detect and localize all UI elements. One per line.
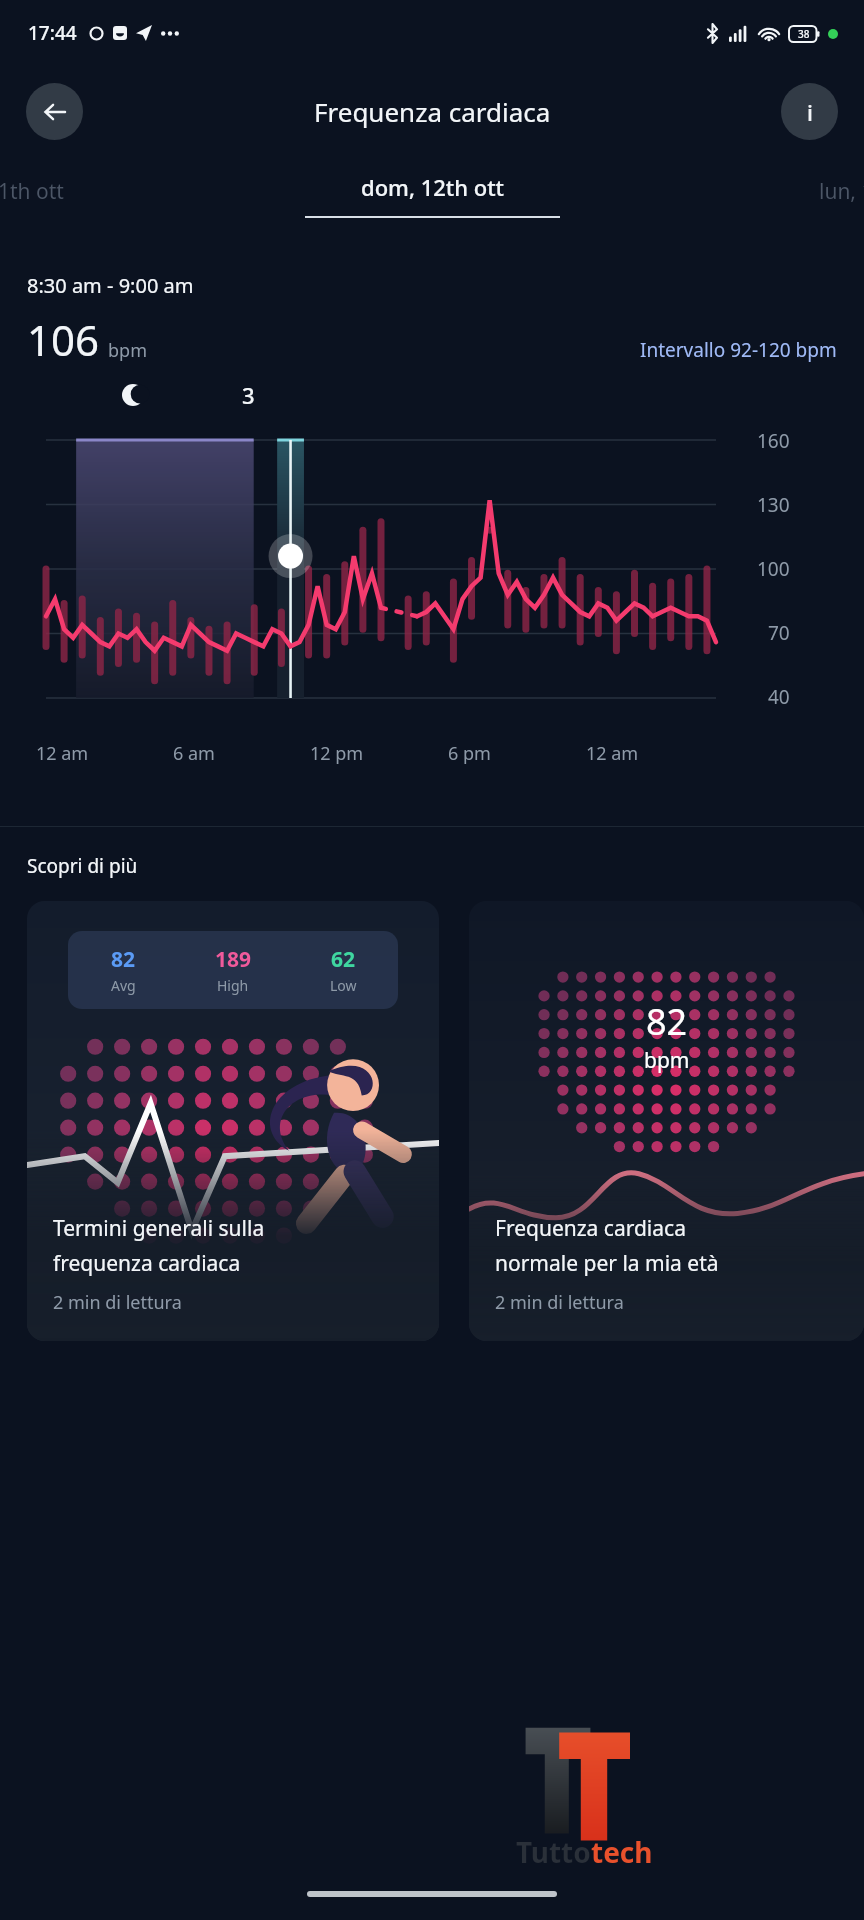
staticText: 40 xyxy=(768,684,790,710)
button[interactable]: lun, 13 xyxy=(819,177,864,206)
staticText: 2 min di lettura xyxy=(53,1290,182,1315)
staticText: High xyxy=(217,976,249,995)
staticText: bpm xyxy=(108,338,147,363)
staticText: 2 min di lettura xyxy=(495,1290,624,1315)
button[interactable]: Information xyxy=(781,83,838,140)
staticText: 82 xyxy=(111,945,136,974)
staticText: 6 am xyxy=(173,741,310,766)
staticText: Intervallo 92-120 bpm xyxy=(640,337,837,363)
staticText: Frequenza cardiaca xyxy=(314,94,551,129)
staticText: Scopri di più xyxy=(27,853,138,879)
button[interactable]: 82 xyxy=(27,901,439,1341)
staticText: 100 xyxy=(757,556,790,582)
staticText: Termini generali sulla xyxy=(53,1214,265,1243)
staticText: 189 xyxy=(215,945,252,974)
staticText: bpm xyxy=(644,1046,690,1075)
staticText: Avg xyxy=(111,976,136,995)
staticText: 3 xyxy=(242,380,255,410)
button[interactable]: 82 xyxy=(469,901,864,1341)
staticText: 62 xyxy=(331,945,356,974)
staticText: 106 xyxy=(27,311,100,368)
staticText: normale per la mia età xyxy=(495,1249,719,1278)
staticText: 70 xyxy=(768,620,790,646)
staticText: 17:44 xyxy=(28,20,77,46)
staticText: 38 xyxy=(798,27,810,41)
staticText: 82 xyxy=(646,997,688,1046)
button[interactable]: 11th ott xyxy=(0,177,64,206)
staticText: dom, 12th ott xyxy=(361,172,505,202)
staticText: Low xyxy=(330,976,357,995)
staticText: 12 am xyxy=(36,741,173,766)
staticText: 6 pm xyxy=(448,741,586,766)
staticText: Tutto xyxy=(516,1833,591,1871)
staticText: Frequenza cardiaca xyxy=(495,1214,686,1243)
staticText: 160 xyxy=(757,428,790,454)
button[interactable]: Back xyxy=(26,83,83,140)
staticText: 12 pm xyxy=(310,741,448,766)
staticText: i xyxy=(807,97,813,127)
staticText: 8:30 am - 9:00 am xyxy=(27,272,194,299)
staticText: 12 am xyxy=(586,741,724,766)
button[interactable]: dom, 12th ott xyxy=(305,172,560,218)
staticText: tech xyxy=(591,1833,653,1871)
staticText: frequenza cardiaca xyxy=(53,1249,241,1278)
staticText: 130 xyxy=(757,492,790,518)
